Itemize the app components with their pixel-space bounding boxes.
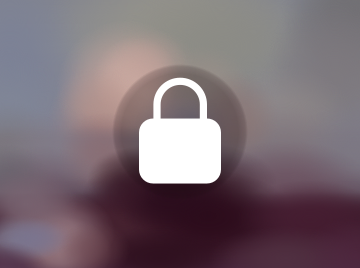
button[interactable]: Unlock photo	[0, 0, 360, 268]
